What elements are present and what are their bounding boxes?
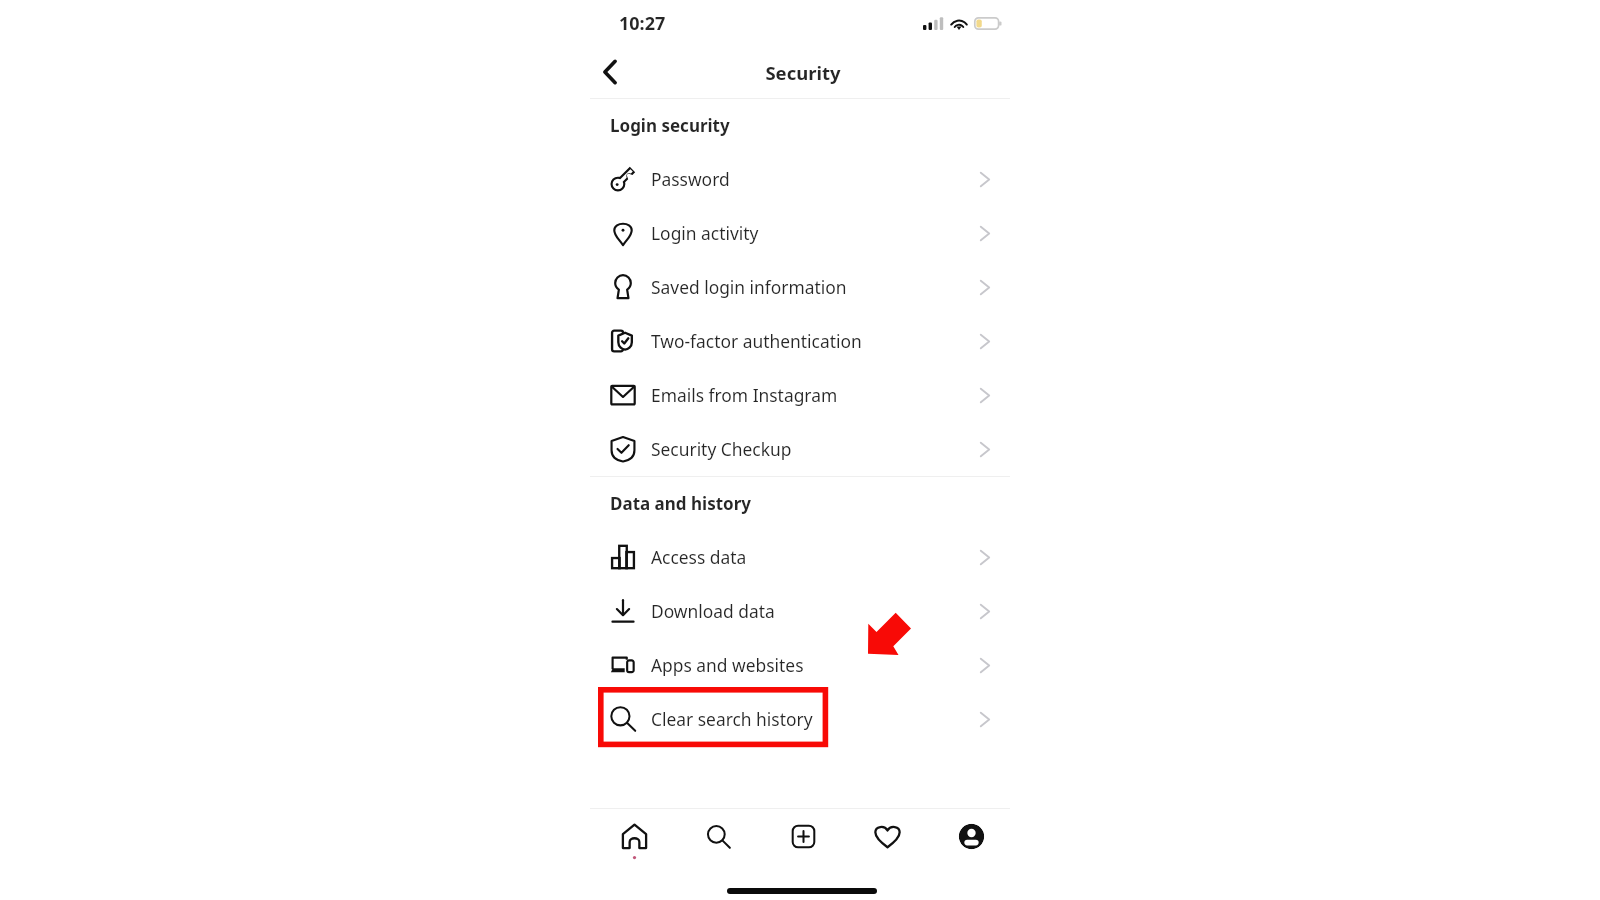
button[interactable]: Access data: [590, 530, 1010, 584]
button[interactable]: Apps and websites: [590, 638, 1010, 692]
button[interactable]: Two-factor authentication: [590, 314, 1010, 368]
staticText: Login activity: [651, 221, 759, 245]
staticText: Apps and websites: [651, 653, 804, 677]
staticText: Saved login information: [651, 275, 847, 299]
staticText: Access data: [651, 545, 747, 569]
staticText: Security: [765, 60, 841, 85]
button[interactable]: Password: [590, 152, 1010, 206]
button[interactable]: Back: [588, 50, 632, 94]
button[interactable]: Create: [776, 809, 830, 863]
staticText: Login security: [610, 114, 730, 137]
staticText: 10:27: [619, 11, 666, 36]
staticText: Password: [651, 167, 730, 191]
button[interactable]: Saved login information: [590, 260, 1010, 314]
button[interactable]: Search: [691, 809, 745, 863]
staticText: Data and history: [610, 492, 751, 515]
staticText: Two-factor authentication: [651, 329, 862, 353]
staticText: Emails from Instagram: [651, 383, 838, 407]
staticText: Download data: [651, 599, 775, 623]
button[interactable]: Security Checkup: [590, 422, 1010, 476]
button[interactable]: Emails from Instagram: [590, 368, 1010, 422]
staticText: Security Checkup: [651, 437, 792, 461]
button[interactable]: Activity: [860, 809, 914, 863]
button[interactable]: Download data: [590, 584, 1010, 638]
button[interactable]: Clear search history: [590, 692, 1010, 746]
button[interactable]: Login activity: [590, 206, 1010, 260]
staticText: Clear search history: [651, 707, 813, 731]
button[interactable]: Profile: [944, 809, 998, 863]
button[interactable]: Home: [607, 809, 661, 863]
